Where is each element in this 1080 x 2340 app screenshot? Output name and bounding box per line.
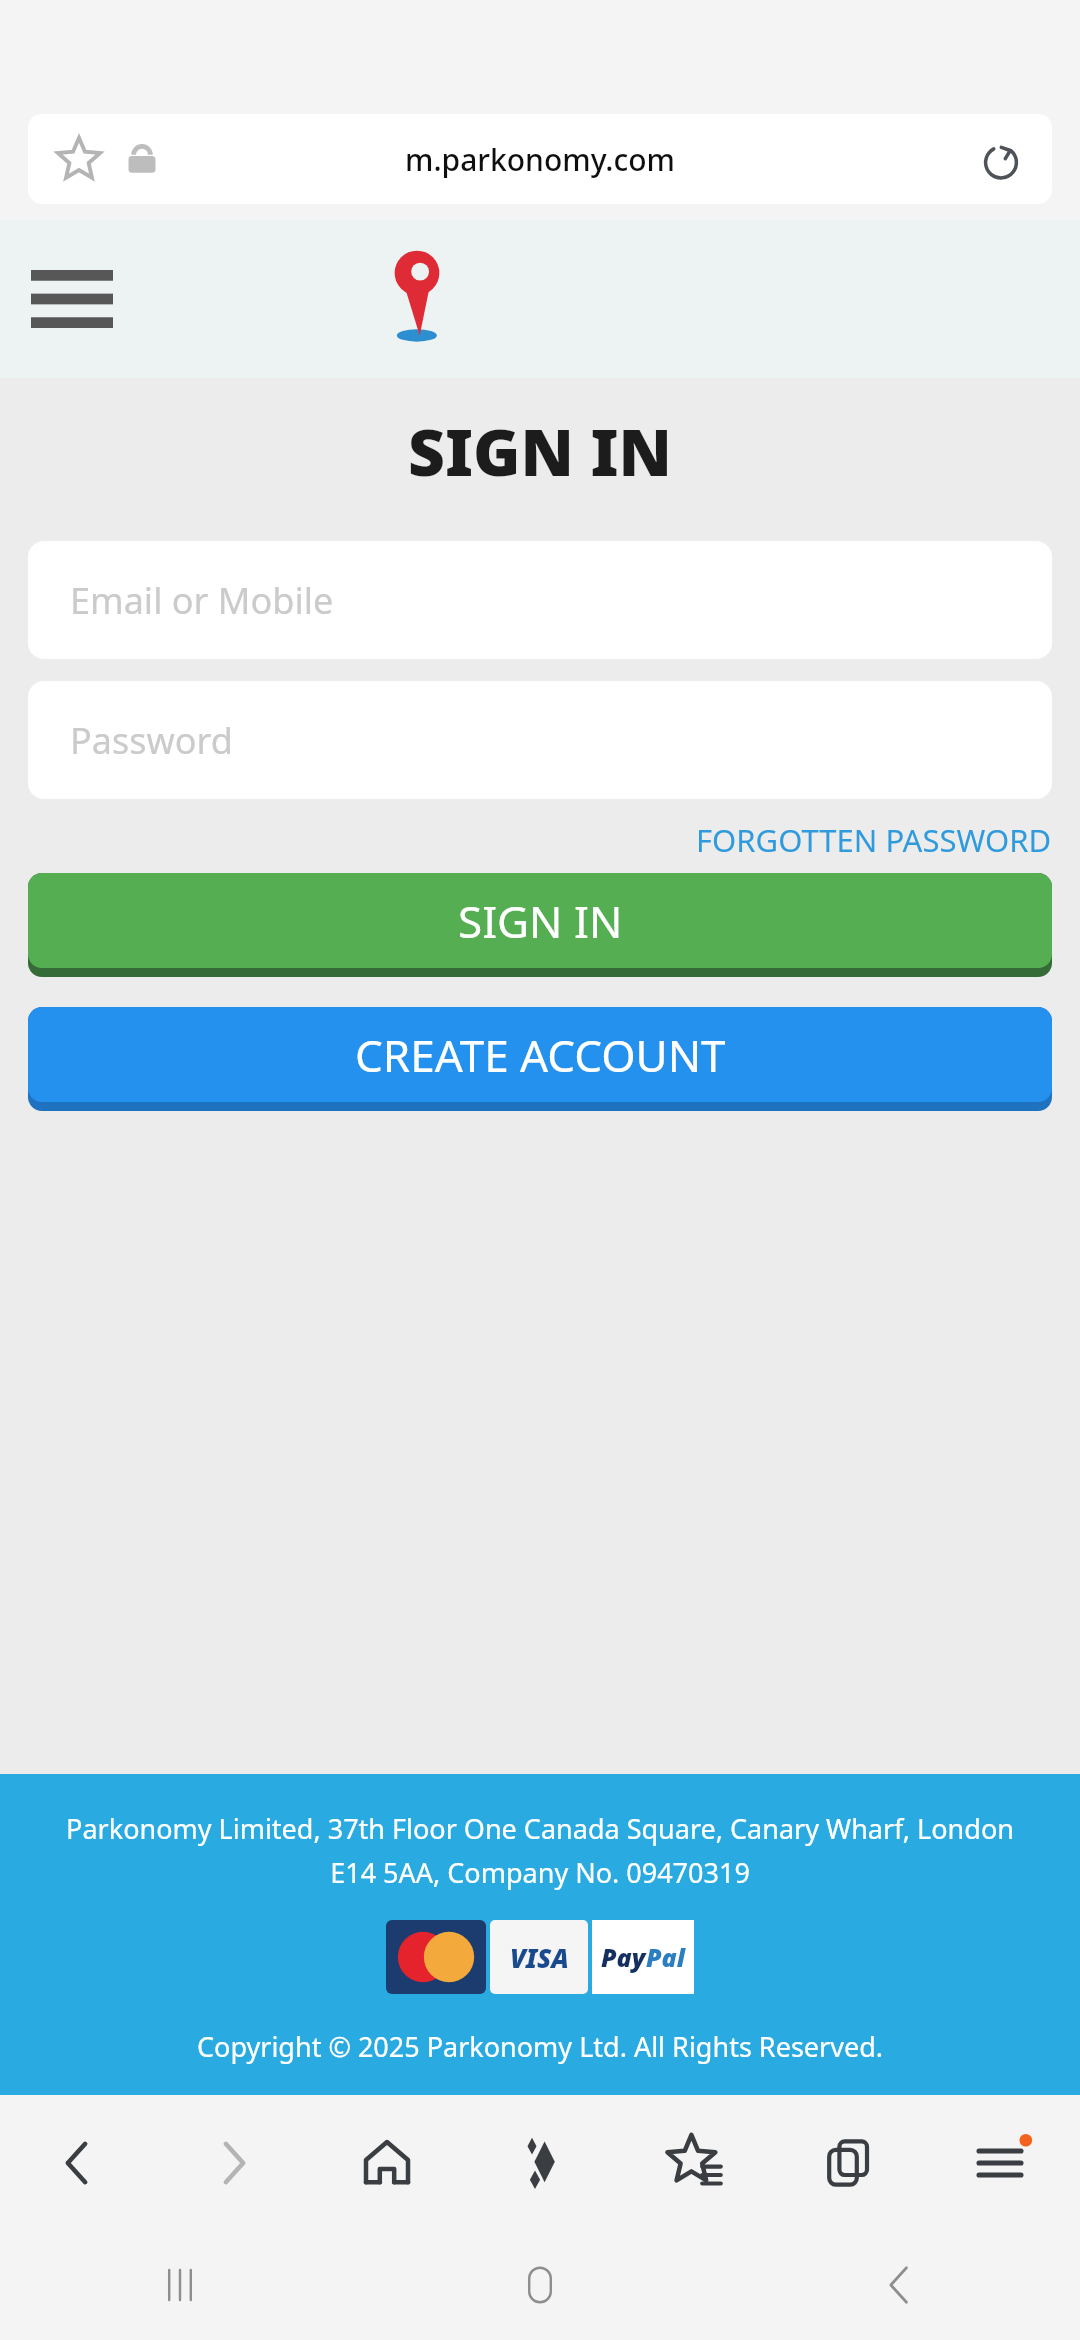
button[interactable]: Email or Mobile <box>28 541 1052 659</box>
button[interactable]: More options <box>926 2095 1080 2230</box>
button[interactable]: Parkonomy home <box>393 247 713 351</box>
button[interactable]: Bookmark page <box>48 128 110 190</box>
staticText: Parkonomy Limited, 37th Floor One Canada… <box>40 1810 1040 1890</box>
staticText: VISA <box>510 1940 569 1975</box>
button[interactable]: Reload <box>970 128 1032 190</box>
button[interactable]: PayPal <box>592 1920 694 1994</box>
button[interactable]: CREATE ACCOUNT <box>28 1007 1052 1111</box>
button[interactable]: Home <box>310 2095 464 2230</box>
staticText: Email or Mobile <box>70 576 334 625</box>
button[interactable]: Forward <box>155 2095 310 2230</box>
button[interactable]: Back <box>720 2230 1080 2340</box>
staticText: FORGOTTEN PASSWORD <box>696 819 1052 861</box>
button[interactable]: Site security info <box>114 131 170 187</box>
staticText: SIGN IN <box>0 408 1080 495</box>
staticText: Copyright © 2025 Parkonomy Ltd. All Righ… <box>197 2028 883 2065</box>
button[interactable]: Back <box>0 2095 155 2230</box>
button[interactable]: Open menu <box>18 251 126 347</box>
staticText: SIGN IN <box>458 891 623 951</box>
button[interactable]: Tabs <box>772 2095 926 2230</box>
button[interactable]: Visa <box>490 1920 588 1994</box>
button[interactable]: FORGOTTEN PASSWORD <box>690 813 1058 867</box>
staticText: m.parkonomy.com <box>405 139 675 180</box>
button[interactable]: SIGN IN <box>28 873 1052 977</box>
staticText: Password <box>70 716 233 765</box>
button[interactable]: Browsing assistant <box>464 2095 618 2230</box>
button[interactable]: Recent apps <box>0 2230 360 2340</box>
staticText: Pay <box>601 1940 646 1974</box>
button[interactable]: Bookmarks <box>618 2095 772 2230</box>
button[interactable]: Password <box>28 681 1052 799</box>
button[interactable]: Home <box>360 2230 720 2340</box>
staticText: CREATE ACCOUNT <box>355 1025 726 1085</box>
staticText: Pal <box>646 1940 685 1974</box>
button[interactable]: MasterCard <box>386 1920 486 1994</box>
